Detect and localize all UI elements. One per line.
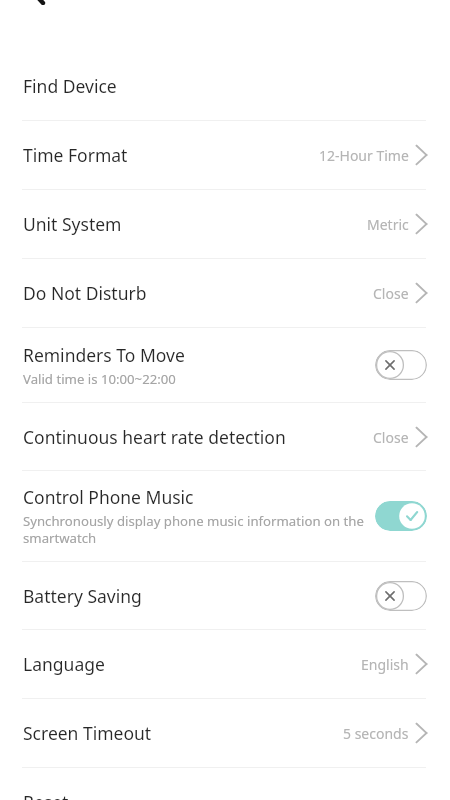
staticText: 12-Hour Time: [319, 146, 409, 165]
staticText: Close: [373, 428, 409, 447]
staticText: Continuous heart rate detection: [23, 425, 286, 449]
staticText: Close: [373, 284, 409, 303]
button[interactable]: Do Not Disturb: [0, 259, 450, 327]
button[interactable]: Switch on: [375, 501, 427, 531]
staticText: 5 seconds: [343, 724, 409, 743]
staticText: Metric: [367, 215, 409, 234]
button[interactable]: Unit System: [0, 190, 450, 258]
staticText: Reset: [23, 790, 69, 800]
button[interactable]: Back: [0, 0, 52, 5]
button[interactable]: Battery Saving: [0, 562, 450, 629]
staticText: Unit System: [23, 212, 122, 236]
staticText: Battery Saving: [23, 584, 142, 608]
staticText: English: [361, 655, 409, 674]
button[interactable]: Language: [0, 630, 450, 698]
staticText: Valid time is 10:00~22:00: [23, 370, 176, 388]
staticText: Language: [23, 652, 105, 676]
staticText: Screen Timeout: [23, 721, 152, 745]
staticText: Synchronously display phone music inform…: [23, 512, 368, 547]
staticText: Do Not Disturb: [23, 281, 147, 305]
staticText: Time Format: [23, 143, 128, 167]
button[interactable]: Screen Timeout: [0, 699, 450, 767]
staticText: Control Phone Music: [23, 485, 194, 509]
button[interactable]: Switch off: [375, 350, 427, 380]
button[interactable]: Time Format: [0, 121, 450, 189]
button[interactable]: Continuous heart rate detection: [0, 403, 450, 470]
button[interactable]: Control Phone Music: [0, 471, 450, 561]
staticText: Find Device: [23, 74, 117, 98]
button[interactable]: Find Device: [0, 52, 450, 120]
staticText: Reminders To Move: [23, 343, 185, 367]
button[interactable]: Reset: [0, 768, 450, 800]
button[interactable]: Switch off: [375, 581, 427, 611]
button[interactable]: Reminders To Move: [0, 328, 450, 402]
